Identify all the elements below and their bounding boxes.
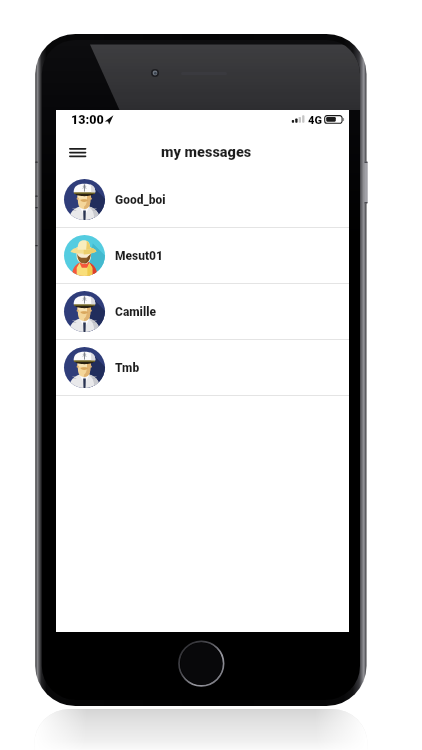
staticText: Tmb (115, 361, 140, 375)
staticText: 4G (308, 114, 322, 127)
button[interactable]: Tmb (56, 340, 349, 396)
button[interactable]: Mesut01 (56, 228, 349, 284)
staticText: my messages (161, 144, 252, 161)
staticText: Good_boi (115, 193, 166, 207)
button[interactable]: Open navigation menu (59, 138, 87, 166)
button[interactable]: Camille (56, 284, 349, 340)
staticText: 13:00 (71, 112, 104, 127)
staticText: Mesut01 (115, 249, 164, 263)
staticText: Camille (115, 305, 157, 319)
button[interactable]: Good_boi (56, 172, 349, 228)
